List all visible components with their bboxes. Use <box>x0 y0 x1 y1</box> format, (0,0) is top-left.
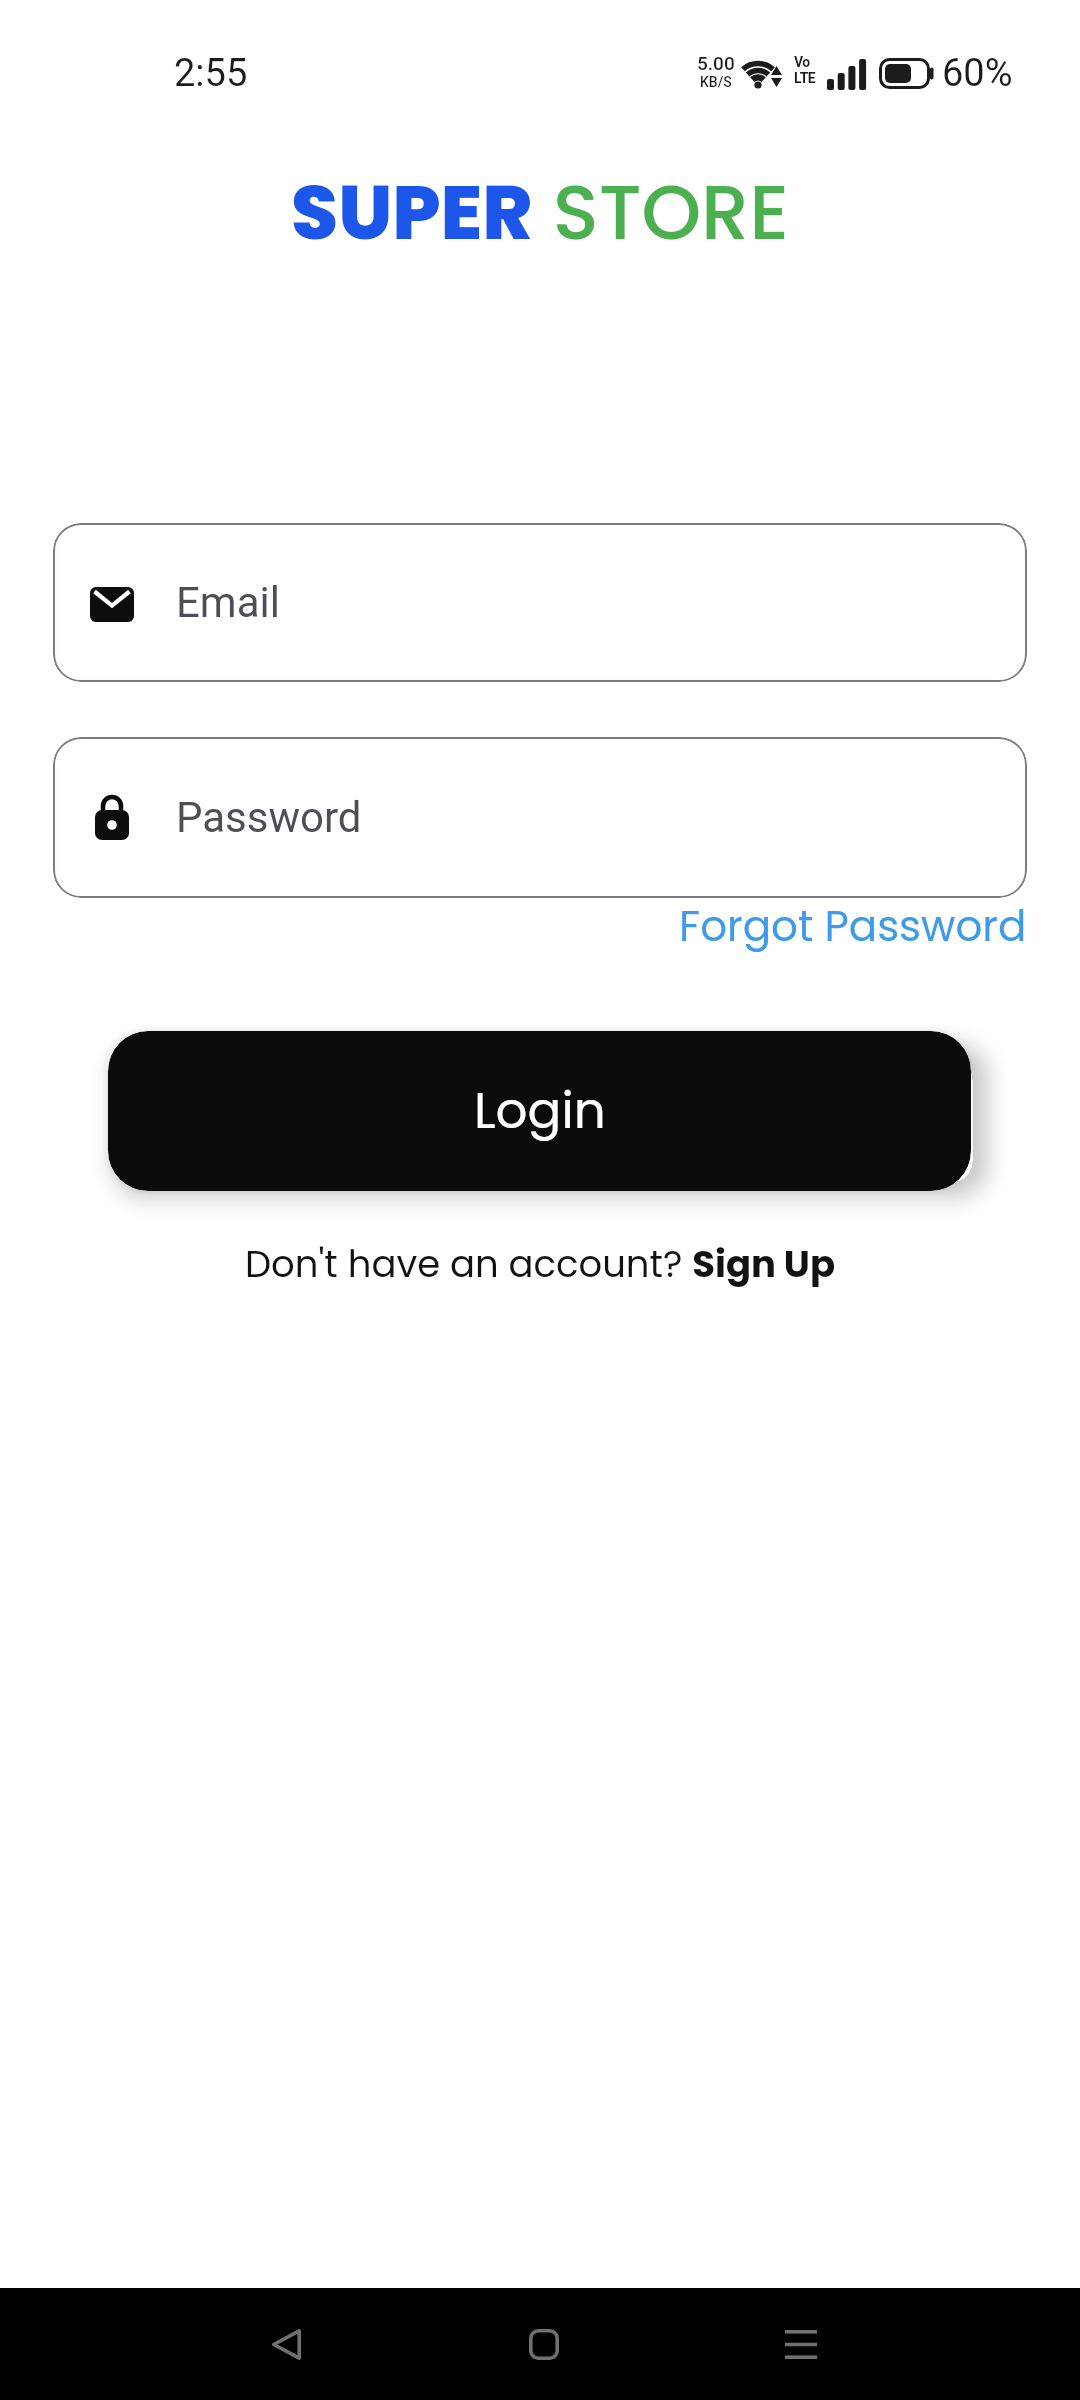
button[interactable] <box>250 2308 322 2380</box>
staticText: Vo <box>794 54 810 70</box>
staticText: Login <box>474 1076 606 1146</box>
staticText: Password <box>176 793 362 842</box>
button[interactable]: Login <box>108 1031 971 1191</box>
staticText: SUPER STORE <box>0 159 1080 265</box>
staticText: 60% <box>942 51 1013 96</box>
button[interactable]: Don't have an account? Sign Up <box>0 1238 1080 1290</box>
button[interactable]: Email <box>53 523 1027 682</box>
button[interactable] <box>765 2308 837 2380</box>
staticText: 2:55 <box>174 51 248 96</box>
staticText: Email <box>176 578 280 627</box>
staticText: LTE <box>794 70 816 86</box>
button[interactable]: Forgot Password <box>679 897 1027 956</box>
button[interactable] <box>508 2308 580 2380</box>
button[interactable]: Password <box>53 737 1027 898</box>
staticText: KB/S <box>700 74 732 90</box>
staticText: 5.00 <box>697 52 735 74</box>
